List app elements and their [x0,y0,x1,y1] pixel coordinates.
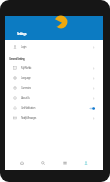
staticText: Settings [17,32,26,36]
staticText: About Us [21,96,30,100]
button[interactable]: My Wishlist [5,63,103,73]
button[interactable]: Login [5,40,103,54]
button[interactable]: About Us [5,93,103,103]
button[interactable]: Search [36,156,50,170]
staticText: General Setting [9,57,25,61]
staticText: Notify Messages [21,116,36,120]
staticText: Currencies [21,86,31,90]
button[interactable]: Notify Messages [5,113,103,123]
button[interactable]: Currencies [5,83,103,93]
button[interactable]: Language [5,73,103,83]
staticText: Login [21,45,27,49]
button[interactable]: Get Notification [5,103,103,113]
button[interactable]: Categories [58,156,72,170]
staticText: Get Notification [21,106,35,110]
button[interactable]: Profile [79,156,93,170]
staticText: Language [21,76,31,80]
button[interactable]: Home [15,156,29,170]
staticText: My Wishlist [21,66,31,70]
